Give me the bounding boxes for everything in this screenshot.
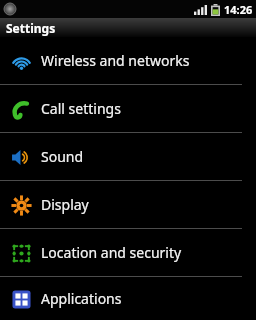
- other: Notification: [4, 3, 16, 15]
- staticText: Applications: [41, 289, 122, 308]
- staticText: Settings: [6, 20, 56, 36]
- staticText: Sound: [41, 147, 84, 166]
- staticText: Location and security: [41, 243, 182, 262]
- staticText: 14:26: [224, 2, 253, 17]
- button[interactable]: Display: [0, 181, 256, 228]
- staticText: Call settings: [41, 99, 121, 118]
- button[interactable]: Applications: [0, 277, 256, 320]
- staticText: Wireless and networks: [41, 51, 190, 70]
- button[interactable]: Call settings: [0, 85, 256, 132]
- staticText: Display: [41, 195, 89, 214]
- button[interactable]: Wireless and networks: [0, 37, 256, 84]
- button[interactable]: Location and security: [0, 229, 256, 276]
- button[interactable]: Sound: [0, 133, 256, 180]
